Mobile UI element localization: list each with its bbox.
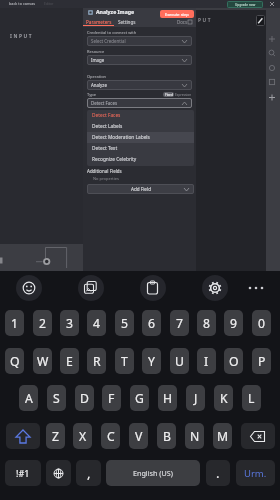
staticText: Q <box>10 353 20 370</box>
button[interactable]: 6 <box>142 310 161 336</box>
staticText: 0 <box>258 315 265 332</box>
button[interactable]: 1 <box>5 310 24 336</box>
staticText: G <box>135 390 144 407</box>
button[interactable]: Detect Text <box>87 143 194 154</box>
staticText: Type <box>87 92 96 97</box>
button[interactable]: P <box>252 348 271 374</box>
button[interactable]: , <box>76 460 101 486</box>
staticText: Y <box>148 353 155 370</box>
button[interactable]: W <box>33 348 52 374</box>
button[interactable]: 3 <box>60 310 79 336</box>
button[interactable] <box>78 275 104 301</box>
button[interactable]: J <box>186 385 205 411</box>
button[interactable]: B <box>157 423 176 449</box>
button[interactable]: Image <box>87 55 192 65</box>
button[interactable]: V <box>129 423 148 449</box>
button[interactable]: N <box>185 423 204 449</box>
button[interactable] <box>16 275 42 301</box>
staticText: 1 <box>11 315 18 332</box>
staticText: I <box>204 353 209 370</box>
button[interactable]: D <box>75 385 94 411</box>
staticText: 3 <box>66 315 73 332</box>
staticText: Expression <box>175 93 192 97</box>
button[interactable]: X <box>73 423 92 449</box>
button[interactable]: Detect Labels <box>87 121 194 132</box>
button[interactable]: F <box>102 385 121 411</box>
staticText: Credential to connect with <box>87 30 137 35</box>
button[interactable]: English (US) <box>106 460 200 486</box>
button[interactable]: Execute step <box>160 10 194 18</box>
staticText: 6 <box>148 315 155 332</box>
staticText: INPUT <box>10 33 34 40</box>
button[interactable]: L <box>242 385 261 411</box>
button[interactable]: Upgrade now <box>227 1 263 8</box>
staticText: O <box>229 353 239 370</box>
button[interactable]: 5 <box>115 310 134 336</box>
button[interactable]: S <box>47 385 66 411</box>
button[interactable]: H <box>158 385 177 411</box>
button[interactable]: 8 <box>197 310 216 336</box>
button[interactable]: . <box>206 460 230 486</box>
button[interactable]: Urm. <box>236 460 275 486</box>
staticText: Additional Fields <box>87 168 122 174</box>
button[interactable]: M <box>213 423 232 449</box>
staticText: Z <box>52 428 59 445</box>
button[interactable]: 0 <box>252 310 271 336</box>
button[interactable]: C <box>101 423 120 449</box>
button[interactable]: 9 <box>224 310 243 336</box>
staticText: Fixed <box>165 93 173 97</box>
button[interactable]: Detect Faces <box>87 110 194 121</box>
button[interactable]: K <box>214 385 233 411</box>
button[interactable] <box>202 275 228 301</box>
button[interactable] <box>241 423 275 449</box>
staticText: D <box>80 390 89 407</box>
button[interactable] <box>270 2 274 6</box>
staticText: E <box>66 353 73 370</box>
button[interactable]: O <box>224 348 243 374</box>
button[interactable]: G <box>130 385 149 411</box>
button[interactable]: 4 <box>87 310 106 336</box>
button[interactable]: E <box>60 348 79 374</box>
button[interactable] <box>256 15 265 26</box>
staticText: 7 <box>176 315 183 332</box>
button[interactable]: Add Field <box>87 184 194 194</box>
staticText: H <box>163 390 173 407</box>
staticText: PUT <box>198 17 213 24</box>
button[interactable]: Recognize Celebrity <box>87 154 194 165</box>
staticText: R <box>93 353 101 370</box>
button[interactable]: T <box>115 348 134 374</box>
button[interactable] <box>46 460 71 486</box>
button[interactable]: I <box>197 348 216 374</box>
staticText: P <box>258 353 266 370</box>
button[interactable]: A <box>19 385 38 411</box>
button[interactable]: 7 <box>170 310 189 336</box>
button[interactable] <box>6 423 40 449</box>
staticText: 4 <box>93 315 100 332</box>
staticText: 2 <box>39 315 46 332</box>
button[interactable]: Fixed <box>163 92 174 97</box>
button[interactable]: Detect Moderation Labels <box>87 132 194 143</box>
button[interactable]: Select Credential <box>87 36 192 46</box>
staticText: Detect Moderation Labels <box>92 134 150 141</box>
staticText: T <box>121 353 128 370</box>
button[interactable] <box>248 286 264 290</box>
button[interactable]: U <box>170 348 189 374</box>
button[interactable]: Analyze <box>87 80 192 90</box>
button[interactable]: Q <box>5 348 24 374</box>
button[interactable] <box>140 275 166 301</box>
staticText: Docs <box>177 19 188 25</box>
staticText: Select Credential <box>91 38 126 44</box>
staticText: Detect Faces <box>92 112 121 119</box>
button[interactable]: Detect Faces <box>87 98 192 108</box>
staticText: Detect Labels <box>92 123 123 130</box>
staticText: B <box>163 428 171 445</box>
staticText: Editor <box>44 1 54 6</box>
button[interactable]: Y <box>142 348 161 374</box>
staticText: Execute step <box>165 12 189 17</box>
button[interactable]: Z <box>46 423 65 449</box>
staticText: Resource <box>87 49 105 54</box>
staticText: L <box>248 390 255 407</box>
button[interactable]: 2 <box>33 310 52 336</box>
button[interactable]: R <box>87 348 106 374</box>
button[interactable]: !#1 <box>5 460 41 486</box>
